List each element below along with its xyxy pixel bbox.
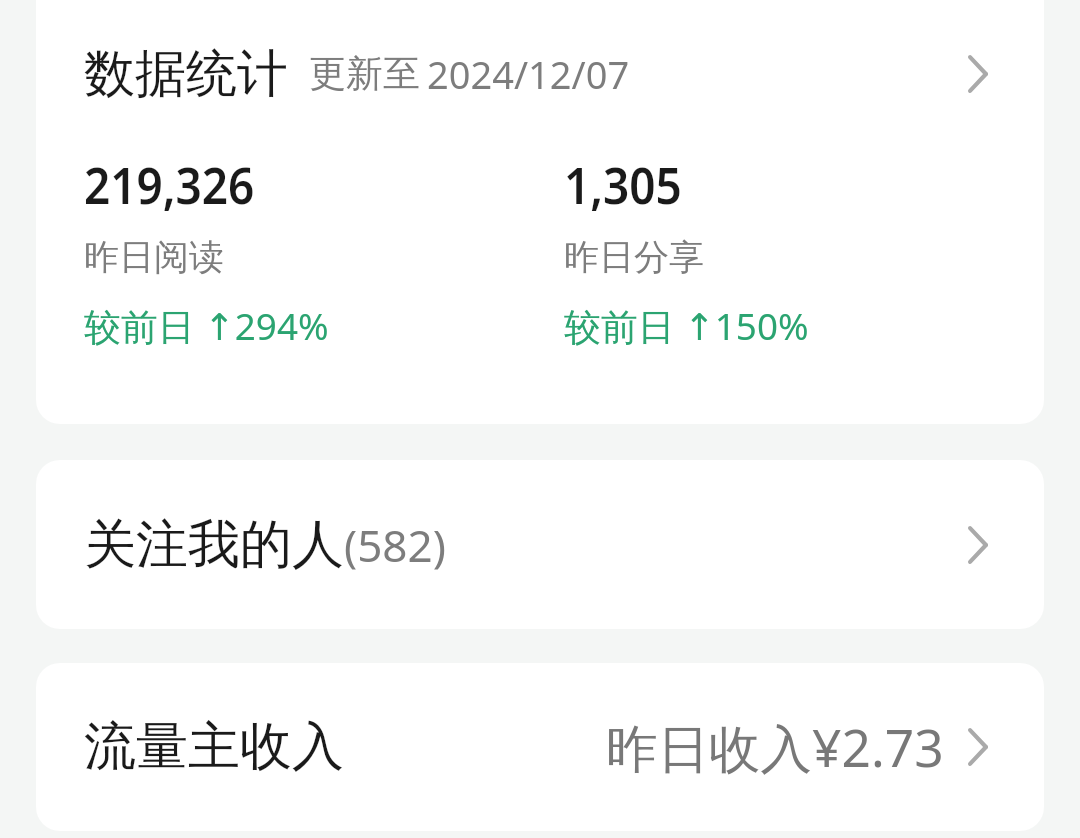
staticText: 219,326 (84, 149, 255, 218)
staticText: 昨日阅读 (84, 235, 224, 279)
staticText: 较前日 ↑150% (564, 301, 809, 351)
staticText: 2024/12/07 (427, 48, 630, 100)
button[interactable]: 219,326 (84, 149, 564, 351)
staticText: 更新至 (309, 50, 420, 97)
staticText: 昨日分享 (564, 235, 704, 279)
staticText: 关注我的人(582) (84, 512, 446, 578)
staticText: 昨日收入¥2.73 (606, 712, 944, 782)
button[interactable]: 流量主收入 (36, 663, 1044, 831)
other: 查看关注我的人 (968, 526, 988, 564)
staticText: 数据统计 (84, 42, 288, 106)
staticText: 较前日 ↑294% (84, 301, 329, 351)
button[interactable]: 1,305 (564, 149, 1044, 351)
other: 查看数据统计详情 (968, 55, 988, 93)
other: 查看流量主收入 (968, 728, 988, 766)
staticText: 流量主收入 (84, 714, 344, 780)
button[interactable]: 数据统计 (36, 0, 1044, 147)
button[interactable]: 关注我的人(582) (36, 460, 1044, 629)
staticText: 1,305 (564, 149, 682, 218)
